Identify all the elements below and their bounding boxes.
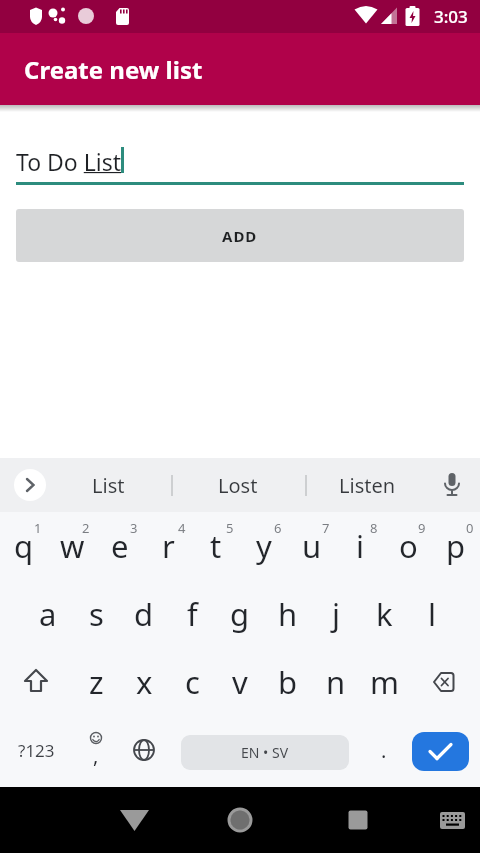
staticText: e (111, 525, 129, 567)
staticText: u (302, 525, 322, 567)
staticText: y (256, 525, 272, 567)
button[interactable] (436, 787, 476, 853)
staticText: ADD (222, 226, 258, 246)
button[interactable]: n (312, 648, 360, 716)
button[interactable]: z (72, 648, 120, 716)
staticText: f (187, 593, 198, 635)
button[interactable] (213, 787, 267, 853)
staticText: p (446, 525, 466, 567)
button[interactable] (331, 787, 385, 853)
staticText: 2 (82, 519, 90, 537)
staticText: ?123 (18, 739, 55, 762)
staticText: d (134, 593, 154, 635)
staticText: i (356, 525, 364, 567)
staticText: Create new list (24, 53, 203, 86)
staticText: Listen (339, 472, 396, 499)
staticText: q (14, 525, 34, 567)
staticText: 6 (274, 519, 282, 537)
staticText: j (332, 593, 340, 635)
button[interactable]: g (216, 580, 264, 648)
staticText: 3:03 (434, 5, 468, 28)
staticText: x (136, 661, 153, 703)
staticText: 4 (178, 519, 186, 537)
staticText: List (92, 472, 125, 499)
button[interactable]: q (0, 512, 48, 580)
staticText: 1 (34, 519, 42, 537)
button[interactable]: ?123 (0, 716, 72, 784)
button[interactable]: ADD (16, 209, 464, 262)
staticText: 8 (370, 519, 378, 537)
staticText: EN • SV (241, 743, 289, 762)
button[interactable] (14, 469, 46, 501)
staticText: 5 (226, 519, 234, 537)
staticText: k (376, 593, 393, 635)
button[interactable]: w (48, 512, 96, 580)
button[interactable]: l (408, 580, 456, 648)
button[interactable]: i (336, 512, 384, 580)
button[interactable] (120, 716, 168, 784)
staticText: m (370, 661, 399, 703)
button[interactable]: v (216, 648, 264, 716)
staticText: c (185, 661, 200, 703)
button[interactable]: p (432, 512, 480, 580)
button[interactable]: o (384, 512, 432, 580)
staticText: r (162, 525, 175, 567)
staticText: l (428, 593, 436, 635)
button[interactable]: d (120, 580, 168, 648)
button[interactable]: b (264, 648, 312, 716)
staticText: n (326, 661, 346, 703)
button[interactable]: c (168, 648, 216, 716)
staticText: g (230, 593, 250, 635)
button[interactable]: Lost (176, 458, 300, 512)
button[interactable]: m (360, 648, 408, 716)
staticText: , (93, 742, 99, 769)
button[interactable]: r (144, 512, 192, 580)
button[interactable]: y (240, 512, 288, 580)
button[interactable] (108, 787, 162, 853)
staticText: 7 (322, 519, 330, 537)
staticText: t (210, 525, 222, 567)
staticText: v (232, 661, 248, 703)
button[interactable]: h (264, 580, 312, 648)
staticText: a (39, 593, 57, 635)
staticText: . (381, 737, 387, 764)
button[interactable]: s (72, 580, 120, 648)
button[interactable]: a (24, 580, 72, 648)
staticText: o (399, 525, 418, 567)
button[interactable]: List (51, 458, 166, 512)
button[interactable]: t (192, 512, 240, 580)
staticText: b (278, 661, 298, 703)
button[interactable]: x (120, 648, 168, 716)
button[interactable]: . (360, 716, 408, 784)
staticText: Lost (218, 472, 258, 499)
staticText: h (278, 593, 298, 635)
staticText: 3 (130, 519, 138, 537)
button[interactable] (408, 648, 480, 716)
button[interactable] (412, 732, 469, 771)
button[interactable]: k (360, 580, 408, 648)
staticText: 0 (466, 519, 474, 537)
button[interactable] (0, 648, 72, 716)
button[interactable]: u (288, 512, 336, 580)
button[interactable]: f (168, 580, 216, 648)
staticText: 9 (418, 519, 426, 537)
button[interactable]: e (96, 512, 144, 580)
staticText: s (89, 593, 104, 635)
staticText: w (60, 525, 85, 567)
staticText: To Do List (16, 146, 122, 177)
button[interactable]: j (312, 580, 360, 648)
button[interactable]: EN • SV (181, 735, 349, 770)
staticText: z (89, 661, 104, 703)
button[interactable]: , (72, 716, 120, 784)
button[interactable]: Listen (305, 458, 429, 512)
